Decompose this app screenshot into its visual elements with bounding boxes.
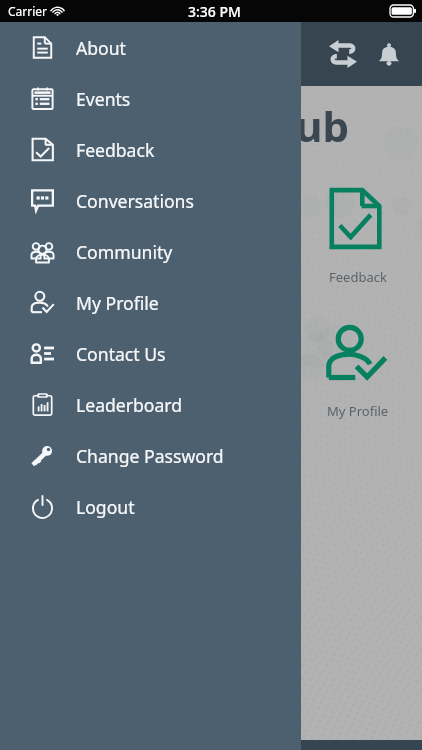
staticText: Community xyxy=(76,240,173,264)
staticText: About xyxy=(76,36,126,60)
button[interactable]: My Profile xyxy=(0,277,301,328)
button[interactable]: Notifications xyxy=(366,31,412,77)
staticText: My Profile xyxy=(76,291,159,315)
staticText: Feedback xyxy=(329,268,387,286)
button[interactable]: Leaderboard xyxy=(0,379,301,430)
staticText: Change Password xyxy=(76,444,224,468)
staticText: Contact Us xyxy=(76,342,166,366)
button[interactable]: Contact Us xyxy=(0,328,301,379)
staticText: Logout xyxy=(76,495,135,519)
staticText: My Profile xyxy=(327,402,389,420)
button[interactable]: Events xyxy=(0,73,301,124)
button[interactable]: Conversations xyxy=(0,175,301,226)
button[interactable]: Feedback xyxy=(0,124,301,175)
staticText: Leaderboard xyxy=(76,393,183,417)
button[interactable]: About xyxy=(0,22,301,73)
button[interactable]: Community xyxy=(0,226,301,277)
staticText: Feedback xyxy=(76,138,155,162)
staticText: Carrier xyxy=(8,3,48,19)
button[interactable]: Change Password xyxy=(0,430,301,481)
button[interactable]: Sync xyxy=(320,31,366,77)
staticText: 3:36 PM xyxy=(188,2,241,21)
staticText: Events xyxy=(76,87,131,111)
button[interactable]: Feedback xyxy=(283,187,422,286)
staticText: Conversations xyxy=(76,189,194,213)
staticText: Hub xyxy=(263,97,349,154)
button[interactable]: Logout xyxy=(0,481,301,532)
button[interactable]: My Profile xyxy=(283,325,422,420)
